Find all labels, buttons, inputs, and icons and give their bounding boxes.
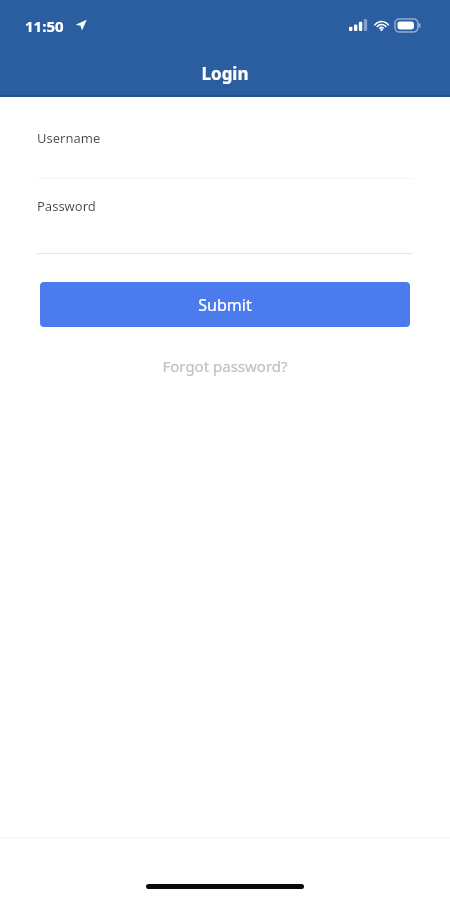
- button[interactable]: Submit: [40, 282, 410, 327]
- staticText: Submit: [198, 294, 252, 316]
- staticText: 11:50: [25, 16, 64, 36]
- staticText: Username: [37, 129, 101, 147]
- staticText: Password: [37, 197, 96, 215]
- staticText: Forgot password?: [162, 356, 288, 376]
- staticText: Login: [201, 62, 249, 85]
- button[interactable]: Forgot password?: [150, 352, 300, 380]
